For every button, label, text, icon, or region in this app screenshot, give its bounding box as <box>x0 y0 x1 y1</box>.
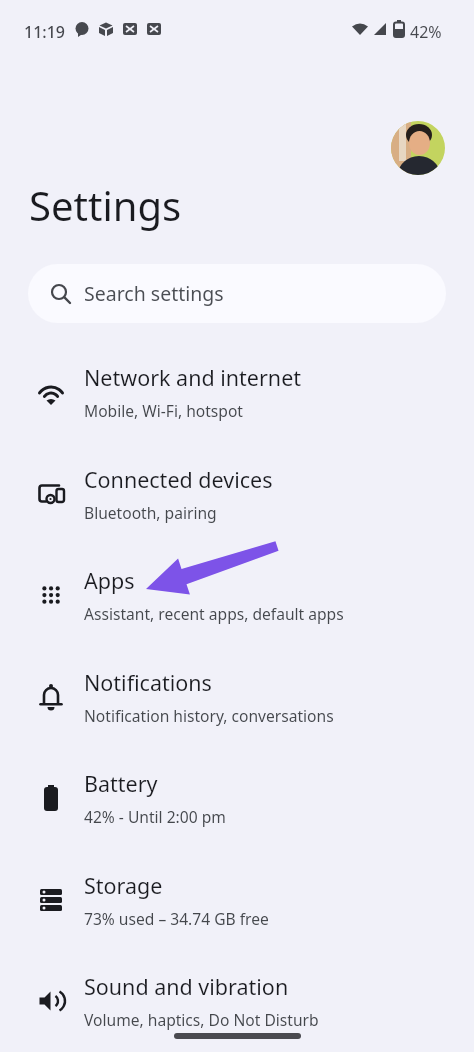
staticText: 73% used – 34.74 GB free <box>84 908 269 929</box>
button[interactable]: Network and internet <box>0 341 474 442</box>
staticText: 11:19 <box>24 21 65 43</box>
staticText: Battery <box>84 769 158 798</box>
button[interactable]: Sound and vibration <box>0 950 474 1051</box>
staticText: Storage <box>84 871 163 900</box>
staticText: Connected devices <box>84 465 273 494</box>
staticText: Mobile, Wi-Fi, hotspot <box>84 400 243 421</box>
staticText: Apps <box>84 566 135 595</box>
button[interactable] <box>391 121 445 175</box>
button[interactable]: Notifications <box>0 646 474 747</box>
staticText: Assistant, recent apps, default apps <box>84 603 344 624</box>
staticText: Settings <box>29 178 182 232</box>
button[interactable]: Apps <box>0 544 474 645</box>
button[interactable]: Search settings <box>28 264 446 323</box>
staticText: Sound and vibration <box>84 972 289 1001</box>
staticText: Network and internet <box>84 363 302 392</box>
staticText: Bluetooth, pairing <box>84 502 217 523</box>
button[interactable]: Battery <box>0 747 474 848</box>
staticText: 42% <box>410 21 442 43</box>
button[interactable]: Storage <box>0 849 474 950</box>
staticText: 42% - Until 2:00 pm <box>84 806 226 827</box>
staticText: Notification history, conversations <box>84 705 334 726</box>
button[interactable]: Connected devices <box>0 443 474 544</box>
staticText: Volume, haptics, Do Not Disturb <box>84 1009 319 1030</box>
staticText: Notifications <box>84 668 212 697</box>
staticText: Search settings <box>84 280 224 307</box>
